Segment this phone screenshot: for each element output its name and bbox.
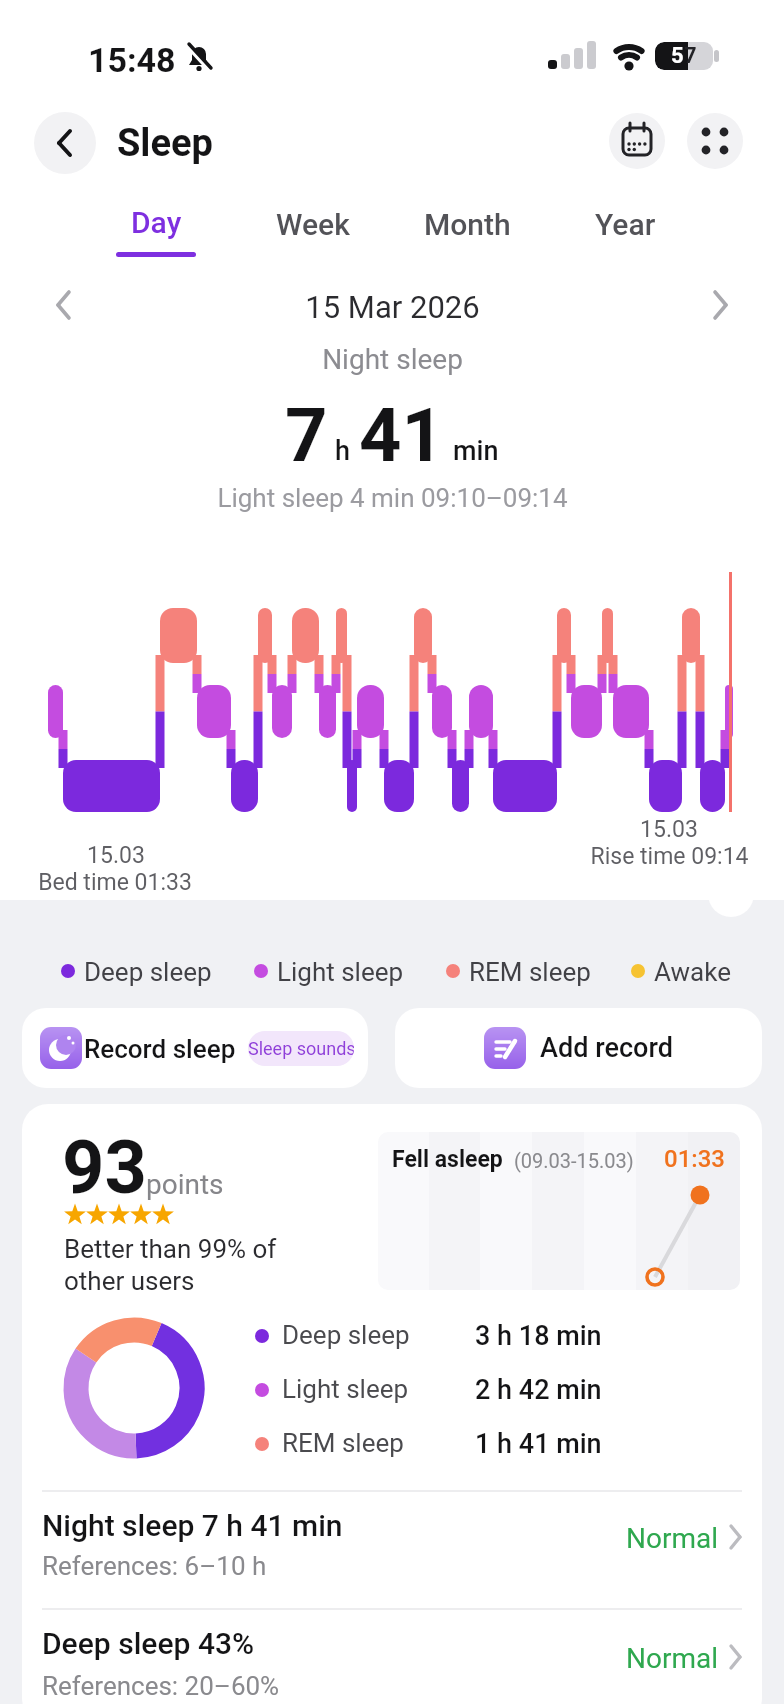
staticText: Light sleep bbox=[277, 957, 404, 987]
staticText: Deep sleep bbox=[84, 957, 212, 987]
staticText: Awake bbox=[654, 957, 731, 987]
staticText: 15 Mar 2026 bbox=[305, 289, 480, 325]
button[interactable] bbox=[609, 113, 665, 169]
staticText: Record sleep bbox=[84, 1034, 236, 1064]
staticText: Bed time 01:33 bbox=[38, 869, 192, 896]
staticText: Deep sleep bbox=[282, 1320, 410, 1350]
staticText: Deep sleep 43% bbox=[42, 1626, 255, 1661]
staticText: 01:33 bbox=[664, 1145, 725, 1173]
staticText: References: 20–60% bbox=[42, 1671, 280, 1701]
staticText: 1 h 41 min bbox=[475, 1428, 602, 1460]
button[interactable]: Deep sleep 43% bbox=[22, 1610, 762, 1704]
staticText: 5 bbox=[671, 43, 684, 69]
staticText: Add record bbox=[540, 1032, 673, 1064]
staticText: 93 bbox=[62, 1124, 147, 1211]
staticText: Rise time 09:14 bbox=[590, 843, 749, 870]
staticText: other users bbox=[64, 1266, 195, 1296]
staticText: Normal bbox=[626, 1642, 719, 1675]
staticText: 2 h 42 min bbox=[475, 1374, 602, 1406]
button[interactable]: Night sleep 7 h 41 min bbox=[22, 1494, 762, 1608]
staticText: h bbox=[335, 435, 350, 467]
button[interactable]: Day bbox=[116, 205, 196, 240]
staticText: Sleep sounds bbox=[248, 1038, 354, 1059]
staticText: Day bbox=[131, 205, 182, 240]
staticText: Fell asleep bbox=[392, 1146, 503, 1173]
staticText: Sleep bbox=[117, 121, 213, 166]
button[interactable]: Add record bbox=[395, 1008, 762, 1088]
staticText: Night sleep 7 h 41 min bbox=[42, 1508, 343, 1543]
staticText: 41 bbox=[359, 392, 444, 479]
button[interactable] bbox=[708, 290, 734, 320]
staticText: 15:48 bbox=[88, 40, 176, 80]
button[interactable] bbox=[34, 112, 96, 174]
staticText: 7 bbox=[684, 43, 697, 69]
staticText: 15.03 bbox=[87, 842, 145, 869]
staticText: REM sleep bbox=[469, 957, 591, 987]
staticText: Light sleep bbox=[282, 1374, 409, 1404]
staticText: (09.03-15.03) bbox=[514, 1149, 634, 1172]
button[interactable] bbox=[687, 113, 743, 169]
staticText: Night sleep bbox=[322, 343, 463, 376]
staticText: 7 bbox=[285, 392, 328, 479]
button[interactable] bbox=[708, 871, 754, 917]
staticText: Normal bbox=[626, 1522, 719, 1555]
staticText: Better than 99% of bbox=[64, 1234, 277, 1264]
button[interactable]: Record sleep bbox=[22, 1008, 368, 1088]
staticText: References: 6–10 h bbox=[42, 1551, 267, 1581]
staticText: 3 h 18 min bbox=[475, 1320, 602, 1352]
staticText: Light sleep 4 min 09:10–09:14 bbox=[217, 483, 568, 513]
staticText: 15.03 bbox=[640, 816, 698, 843]
staticText: points bbox=[146, 1168, 224, 1201]
staticText: min bbox=[453, 435, 499, 467]
staticText: REM sleep bbox=[282, 1428, 404, 1458]
button[interactable] bbox=[50, 290, 76, 320]
